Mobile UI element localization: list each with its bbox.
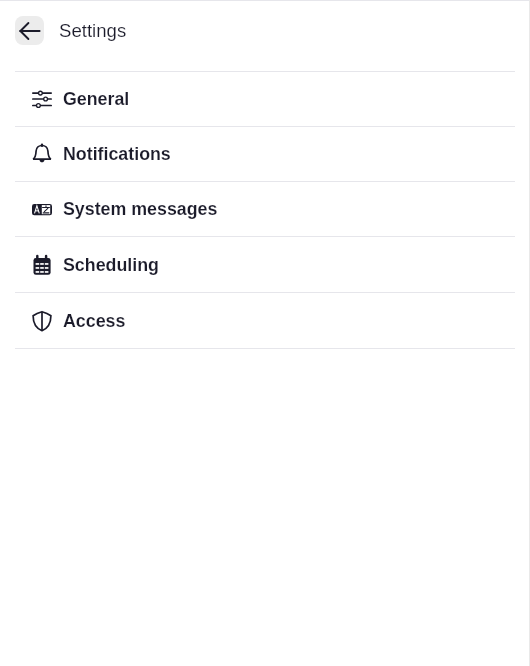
button[interactable]: General <box>0 72 530 126</box>
staticText: Scheduling <box>63 255 159 275</box>
staticText: Notifications <box>63 144 171 164</box>
staticText: Access <box>63 311 126 331</box>
button[interactable]: Notifications <box>0 127 530 181</box>
staticText: Settings <box>59 20 127 41</box>
button[interactable]: System messages <box>0 182 530 236</box>
button[interactable]: Scheduling <box>0 237 530 292</box>
button[interactable]: Access <box>0 293 530 348</box>
staticText: System messages <box>63 199 218 219</box>
button[interactable]: Back <box>15 16 44 45</box>
staticText: General <box>63 89 130 109</box>
